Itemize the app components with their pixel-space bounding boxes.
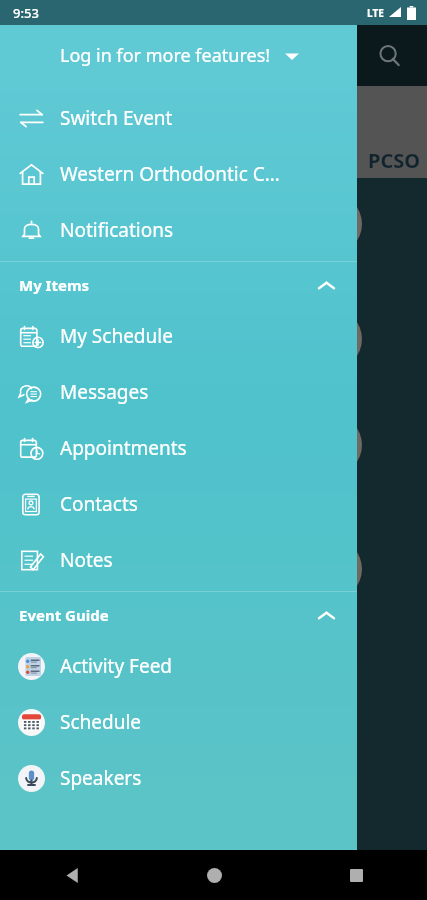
button[interactable]: My Schedule	[0, 308, 357, 364]
button[interactable]: Schedule	[0, 694, 357, 750]
staticText: Schedule	[60, 709, 142, 735]
staticText: Messages	[60, 379, 149, 405]
staticText: Notes	[60, 547, 113, 573]
button[interactable]: Western Orthodontic C…	[0, 146, 357, 202]
button[interactable]: Activity Feed	[0, 638, 357, 694]
staticText: Speakers	[60, 765, 142, 791]
staticText: Western Orthodontic C…	[60, 161, 280, 187]
button[interactable]: Speakers	[0, 750, 357, 806]
staticText: Appointments	[60, 435, 187, 461]
staticText: Notifications	[60, 217, 174, 243]
button[interactable]: My Items	[0, 262, 357, 308]
staticText: 9:53	[13, 4, 39, 22]
button[interactable]: Back	[54, 857, 90, 893]
staticText: CrowdCompass	[177, 869, 283, 888]
staticText: Activity Feed	[60, 653, 173, 679]
staticText: ommunity	[75, 105, 138, 123]
button[interactable]: Event Guide	[0, 592, 357, 638]
button[interactable]: Contacts	[0, 476, 357, 532]
button[interactable]: Recent apps	[338, 857, 374, 893]
button[interactable]: Messages	[0, 364, 357, 420]
button[interactable]: Notifications	[0, 202, 357, 258]
staticText: My Schedule	[60, 323, 173, 349]
staticText: My Items	[19, 275, 90, 295]
staticText: Switch Event	[60, 105, 173, 131]
button[interactable]: Search	[373, 39, 407, 73]
staticText: cvent	[75, 865, 130, 892]
staticText: Contacts	[60, 491, 138, 517]
button[interactable]: Appointments	[0, 420, 357, 476]
staticText: Event Guide	[19, 605, 109, 625]
staticText: Log in for more features!	[60, 43, 271, 68]
button[interactable]: Notes	[0, 532, 357, 588]
button[interactable]: Home	[196, 857, 232, 893]
staticText: ylaws	[300, 606, 334, 624]
button[interactable]: Log in for more features!	[0, 25, 357, 86]
staticText: LTE	[367, 6, 384, 20]
staticText: kers	[300, 261, 326, 279]
button[interactable]: Switch Event	[0, 90, 357, 146]
staticText: PCSO	[368, 147, 421, 174]
